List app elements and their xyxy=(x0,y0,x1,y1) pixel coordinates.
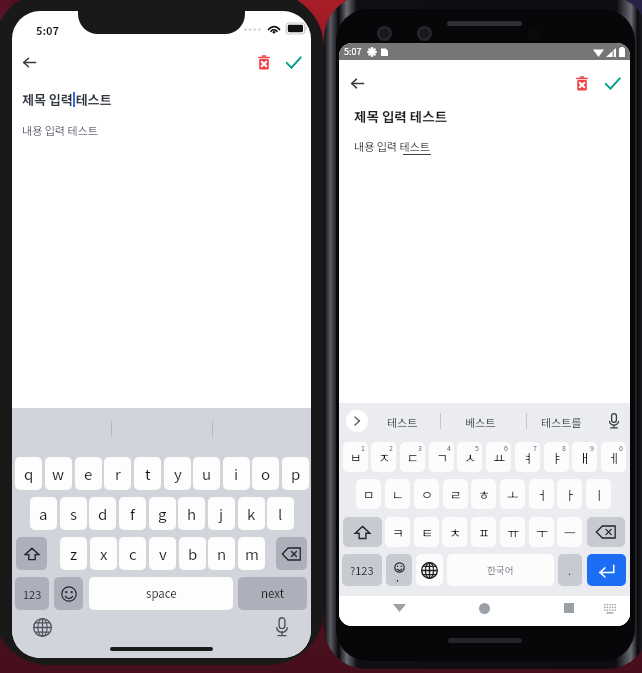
button[interactable]: l xyxy=(267,497,294,530)
button[interactable]: y xyxy=(164,457,191,490)
staticText: 6 xyxy=(504,443,508,453)
staticText: ㅡ xyxy=(564,523,576,542)
button[interactable]: ㅍ xyxy=(471,517,496,547)
staticText: 123 xyxy=(23,586,42,602)
staticText: ㅎ xyxy=(478,485,490,504)
button[interactable]: ㅛ xyxy=(486,442,511,472)
button[interactable]: ㅇ xyxy=(414,479,439,509)
button[interactable]: ㅊ xyxy=(442,517,467,547)
staticText: ㅋ xyxy=(392,523,404,542)
button[interactable]: j xyxy=(208,497,235,530)
staticText: space xyxy=(146,585,177,602)
button[interactable]: ㅡ xyxy=(557,517,582,547)
button[interactable]: v xyxy=(149,537,176,570)
button[interactable]: p xyxy=(282,457,309,490)
button[interactable]: g xyxy=(149,497,176,530)
button[interactable]: ㄴ xyxy=(385,479,410,509)
button[interactable]: 테스트를 xyxy=(531,412,591,432)
button[interactable]: n xyxy=(208,537,235,570)
staticText: g xyxy=(158,503,167,525)
button[interactable]: Emoji xyxy=(54,577,83,610)
button[interactable]: ㄱ xyxy=(429,442,454,472)
button[interactable]: ㅅ xyxy=(457,442,482,472)
button[interactable]: Backspace xyxy=(276,537,307,570)
button[interactable]: o xyxy=(252,457,279,490)
button[interactable]: ㅁ xyxy=(356,479,381,509)
button[interactable]: ㅗ xyxy=(500,479,525,509)
staticText: f xyxy=(130,503,135,525)
button[interactable]: u xyxy=(193,457,220,490)
button[interactable]: Switch keyboard xyxy=(600,598,620,618)
button[interactable]: next xyxy=(238,577,307,610)
button[interactable]: ㅌ xyxy=(414,517,439,547)
staticText: 베스트 xyxy=(465,414,496,430)
button[interactable]: c xyxy=(119,537,146,570)
button[interactable]: q xyxy=(15,457,42,490)
button[interactable]: ㅓ xyxy=(529,479,554,509)
staticText: ㄱ xyxy=(436,448,448,467)
button[interactable]: Delete xyxy=(563,64,601,102)
button[interactable]: Change language xyxy=(416,554,443,586)
staticText: 한국어 xyxy=(487,563,514,577)
button[interactable]: Emoji and comma xyxy=(386,554,412,586)
button[interactable]: b xyxy=(179,537,206,570)
button[interactable]: ㅕ xyxy=(515,442,540,472)
button[interactable]: Back xyxy=(12,43,48,81)
staticText: i xyxy=(234,463,239,485)
button[interactable]: z xyxy=(60,537,87,570)
button[interactable]: space xyxy=(89,577,233,610)
button[interactable]: ㅐ xyxy=(572,442,597,472)
button[interactable]: Back xyxy=(339,64,376,102)
button[interactable]: ㄹ xyxy=(443,479,468,509)
button[interactable]: More suggestions xyxy=(346,410,368,432)
button[interactable]: ㄷ xyxy=(400,442,425,472)
staticText: . xyxy=(568,562,572,578)
button[interactable]: ㅈ xyxy=(371,442,396,472)
button[interactable]: t xyxy=(134,457,161,490)
button[interactable]: Delete xyxy=(245,43,283,81)
button[interactable]: r xyxy=(104,457,131,490)
button[interactable]: Voice input xyxy=(603,410,625,432)
button[interactable]: a xyxy=(30,497,57,530)
button[interactable]: 123 xyxy=(15,577,49,610)
button[interactable]: s xyxy=(60,497,87,530)
staticText: ?123 xyxy=(350,562,374,578)
staticText: ㅗ xyxy=(507,485,519,504)
button[interactable]: f xyxy=(119,497,146,530)
button[interactable]: ㅂ xyxy=(343,442,368,472)
button[interactable]: ㅑ xyxy=(544,442,569,472)
button[interactable]: ㅣ xyxy=(586,479,611,509)
button[interactable]: ?123 xyxy=(342,554,382,586)
button[interactable]: Shift xyxy=(343,517,382,547)
button[interactable]: . xyxy=(558,554,582,586)
button[interactable]: ㅜ xyxy=(529,517,554,547)
button[interactable]: ㅠ xyxy=(500,517,525,547)
button[interactable]: e xyxy=(75,457,102,490)
button[interactable]: ㅎ xyxy=(471,479,496,509)
button[interactable]: 베스트 xyxy=(457,412,503,432)
button[interactable]: 테스트 xyxy=(379,412,425,432)
button[interactable]: i xyxy=(223,457,250,490)
button[interactable]: Save xyxy=(274,43,311,81)
button[interactable]: Backspace xyxy=(587,517,625,547)
button[interactable]: h xyxy=(178,497,205,530)
button[interactable]: Enter xyxy=(587,554,626,586)
button[interactable]: w xyxy=(45,457,72,490)
button[interactable]: 한국어 xyxy=(447,554,554,586)
button[interactable]: ㅔ xyxy=(601,442,626,472)
staticText: 5:07 xyxy=(36,22,60,38)
button[interactable]: Change language xyxy=(28,613,56,641)
button[interactable]: ㅏ xyxy=(557,479,582,509)
button[interactable]: x xyxy=(90,537,117,570)
button[interactable]: ㅋ xyxy=(385,517,410,547)
button[interactable]: Save xyxy=(593,64,630,102)
button[interactable]: d xyxy=(89,497,116,530)
staticText: 5:07 xyxy=(344,45,362,58)
button[interactable]: Recents xyxy=(559,598,579,618)
button[interactable]: Home xyxy=(474,598,494,618)
button[interactable]: k xyxy=(238,497,265,530)
button[interactable]: Back xyxy=(389,598,409,618)
button[interactable]: Voice input xyxy=(268,613,296,641)
button[interactable]: m xyxy=(238,537,265,570)
button[interactable]: Shift xyxy=(16,537,47,570)
